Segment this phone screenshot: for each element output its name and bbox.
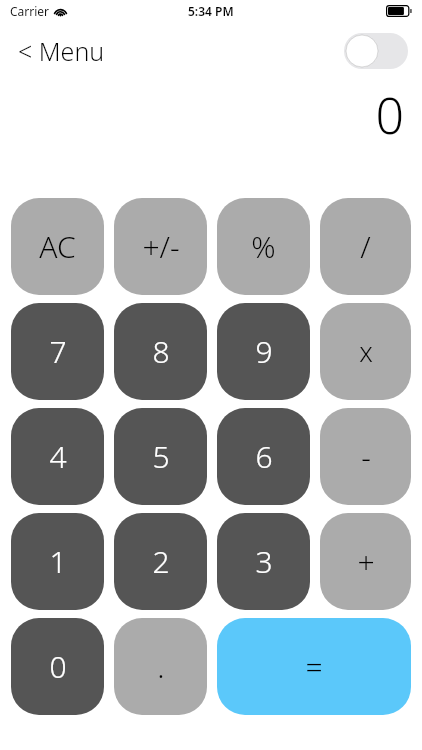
staticText: =: [305, 646, 323, 687]
button[interactable]: +/-: [114, 198, 207, 295]
button[interactable]: 0: [11, 618, 104, 715]
button[interactable]: 3: [217, 513, 310, 610]
staticText: -: [361, 436, 371, 477]
button[interactable]: 5: [114, 408, 207, 505]
button[interactable]: /: [320, 198, 411, 295]
button[interactable]: Toggle: [344, 33, 408, 69]
button[interactable]: 7: [11, 303, 104, 400]
staticText: 4: [49, 436, 67, 477]
staticText: 0: [375, 81, 404, 149]
staticText: 1: [49, 541, 67, 582]
button[interactable]: 4: [11, 408, 104, 505]
button[interactable]: +: [320, 513, 411, 610]
staticText: AC: [39, 226, 76, 267]
staticText: 8: [152, 331, 170, 372]
staticText: 6: [255, 436, 273, 477]
button[interactable]: < Menu: [8, 28, 115, 74]
button[interactable]: .: [114, 618, 207, 715]
staticText: 5: [152, 436, 170, 477]
staticText: 2: [152, 541, 170, 582]
staticText: +: [357, 541, 375, 582]
button[interactable]: 1: [11, 513, 104, 610]
staticText: +/-: [142, 226, 180, 267]
staticText: Carrier: [10, 3, 50, 19]
button[interactable]: 2: [114, 513, 207, 610]
staticText: /: [360, 226, 371, 267]
staticText: < Menu: [18, 34, 105, 68]
button[interactable]: =: [217, 618, 411, 715]
button[interactable]: -: [320, 408, 411, 505]
staticText: 7: [49, 331, 67, 372]
button[interactable]: %: [217, 198, 310, 295]
staticText: .: [157, 646, 165, 687]
staticText: 3: [255, 541, 273, 582]
button[interactable]: AC: [11, 198, 104, 295]
button[interactable]: 9: [217, 303, 310, 400]
staticText: x: [359, 333, 373, 370]
button[interactable]: x: [320, 303, 411, 400]
staticText: 0: [49, 646, 67, 687]
staticText: 9: [255, 331, 273, 372]
staticText: %: [251, 226, 276, 267]
button[interactable]: 8: [114, 303, 207, 400]
button[interactable]: 6: [217, 408, 310, 505]
staticText: 5:34 PM: [188, 3, 234, 19]
